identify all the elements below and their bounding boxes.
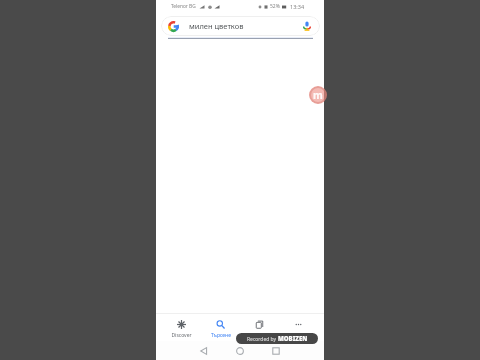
staticText: милен цветков — [189, 21, 244, 31]
button[interactable]: Recents — [266, 341, 286, 360]
staticText: Търсене — [211, 332, 231, 339]
staticText: Още — [293, 332, 305, 339]
button[interactable]: Home — [230, 341, 250, 360]
staticText: Discover — [171, 332, 192, 339]
button[interactable]: Раздели — [240, 310, 279, 340]
button[interactable]: Търсене — [201, 310, 240, 340]
staticText: MOBIZEN — [278, 335, 308, 343]
staticText: Раздели — [250, 332, 270, 339]
staticText: 13:34 — [290, 3, 305, 10]
staticText: Recorded by — [247, 336, 278, 343]
staticText: m — [313, 88, 323, 102]
button[interactable]: Back — [194, 341, 214, 360]
button[interactable]: Още — [279, 310, 318, 340]
staticText: Telenor BG — [171, 3, 196, 10]
button[interactable]: Discover — [161, 310, 201, 340]
button[interactable]: Mobizen recorder — [309, 86, 327, 104]
button[interactable]: милен цветков — [161, 16, 320, 36]
staticText: 52% — [270, 3, 280, 10]
